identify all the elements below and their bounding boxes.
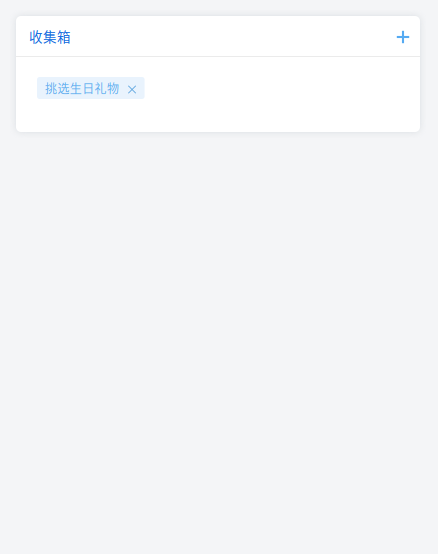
button[interactable]: Add item — [391, 24, 415, 48]
staticText: 挑选生日礼物 — [45, 79, 119, 97]
button[interactable]: 挑选生日礼物 — [45, 79, 119, 97]
button[interactable]: Remove 挑选生日礼物 — [119, 82, 136, 94]
staticText: 收集箱 — [29, 26, 71, 46]
